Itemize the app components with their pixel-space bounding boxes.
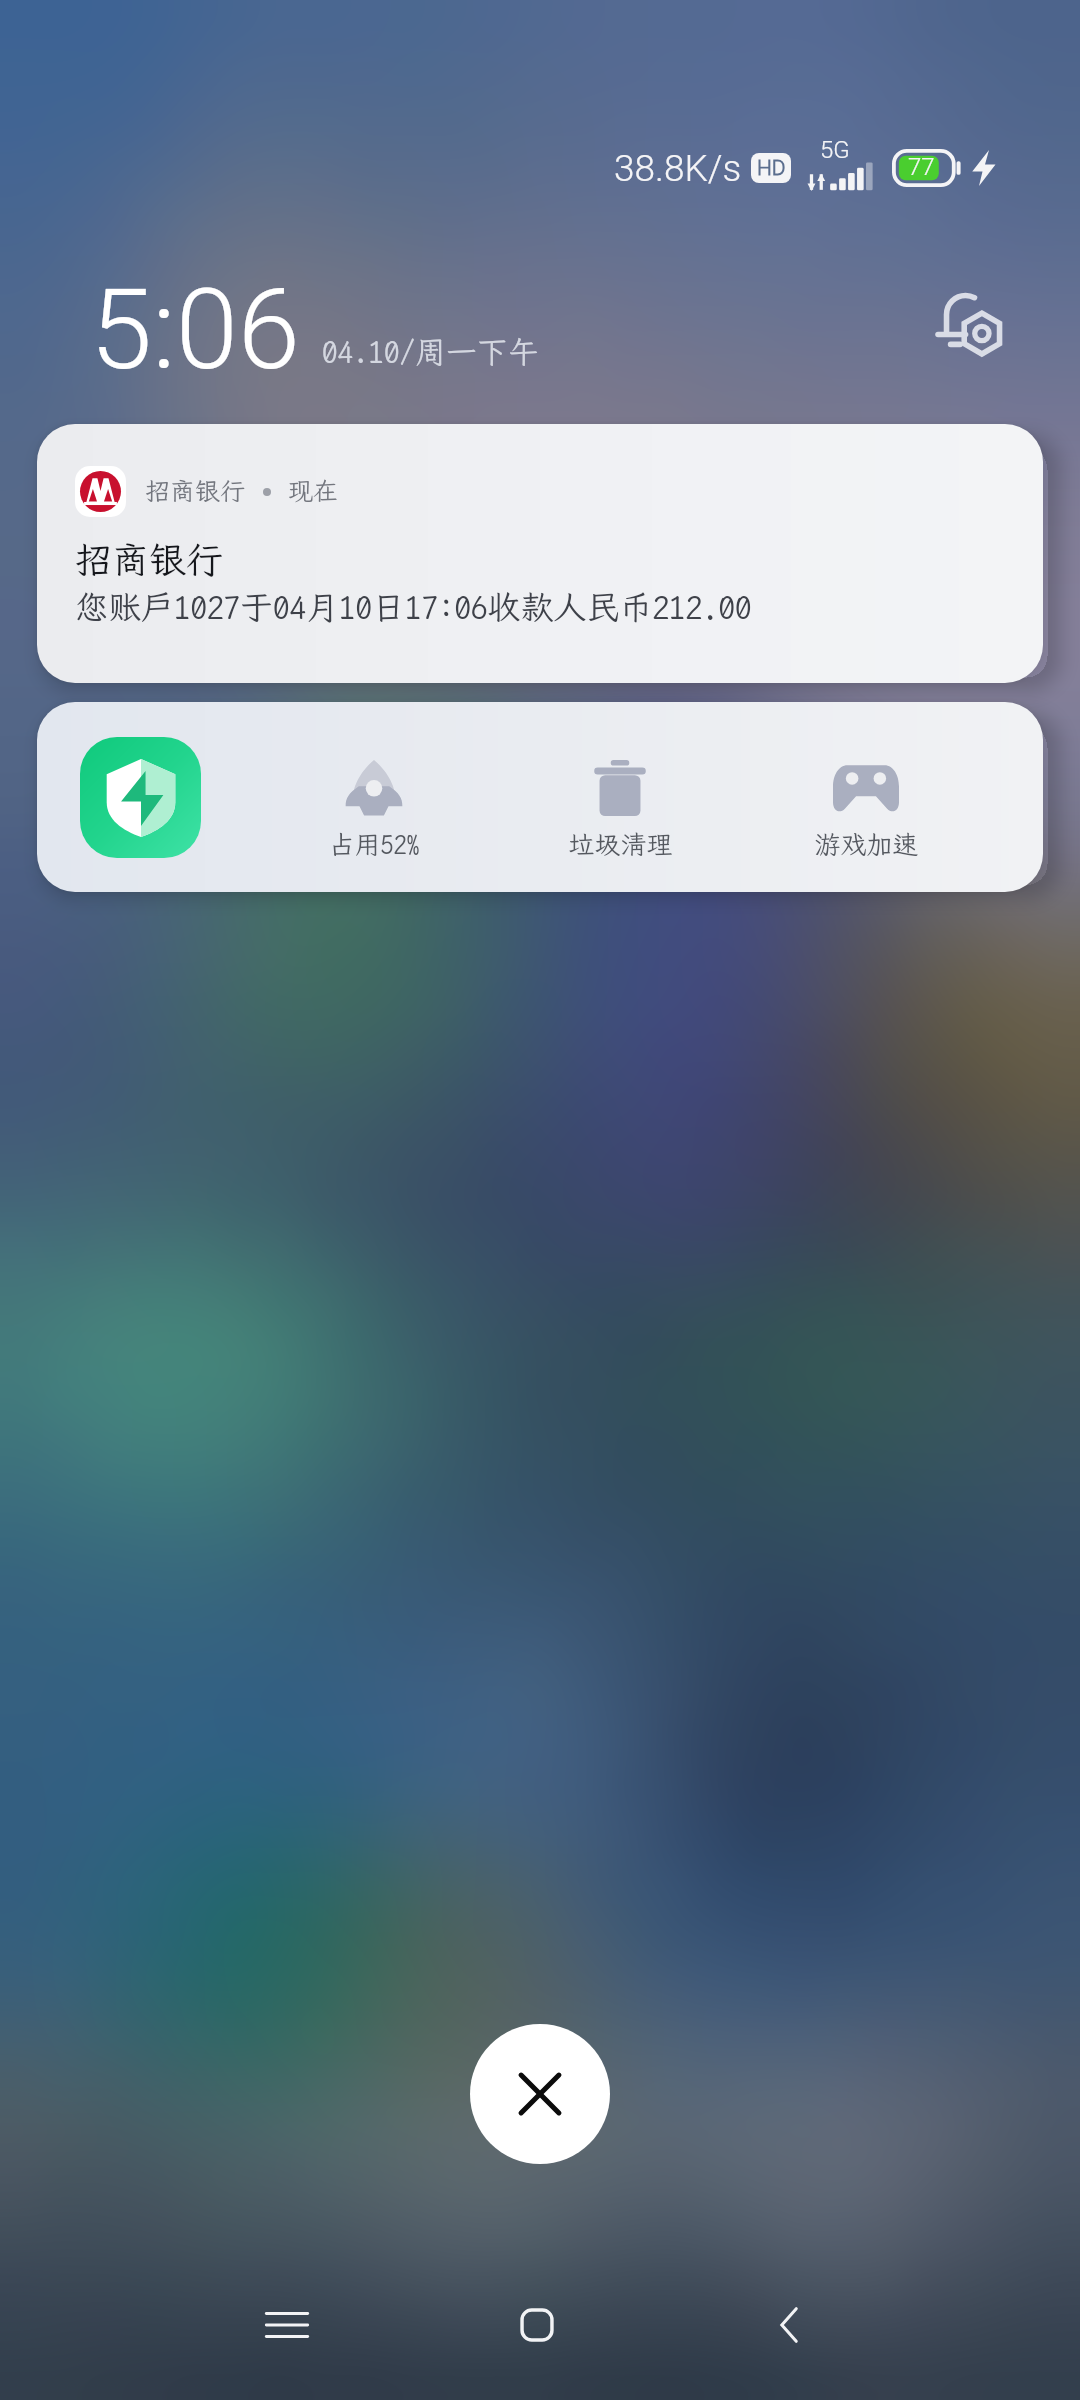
staticText: 38.8K/s [614,147,742,190]
staticText: 垃圾清理 [568,830,673,860]
button[interactable]: 游戏加速 [743,734,989,860]
button[interactable]: Notification settings [932,285,1010,363]
staticText: 04.10/周一下午 [322,334,539,370]
staticText: 游戏加速 [814,830,919,860]
staticText: HD [757,156,786,181]
button[interactable]: Security scan [80,737,201,858]
staticText: 现在 [288,477,339,506]
button[interactable]: Recent apps [232,2270,342,2380]
staticText: 招商银行 [145,477,246,506]
staticText: 您账户1027于04月10日17:06收款人民币212.00 [75,588,752,627]
button[interactable]: 占用52% [251,734,497,860]
staticText: 招商银行 [75,539,223,582]
button[interactable]: Back [735,2270,845,2380]
button[interactable]: 垃圾清理 [497,734,743,860]
button[interactable]: Home [482,2270,592,2380]
button[interactable]: 招商银行 [37,424,1043,683]
staticText: 77 [908,153,935,181]
staticText: 5:06 [90,264,300,384]
button[interactable]: Close [470,2024,610,2164]
staticText: 占用52% [328,830,420,860]
staticText: 5G [820,136,850,164]
